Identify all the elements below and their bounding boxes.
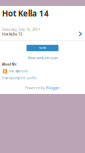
staticText: View my complete profile: [2, 76, 37, 80]
button[interactable]: Home: [26, 45, 58, 51]
staticText: Home: [38, 46, 46, 50]
button[interactable]: View web version: [0, 56, 85, 60]
staticText: Hot Kella 14: [2, 8, 49, 19]
button[interactable]: Blogger: [46, 85, 60, 90]
staticText: About Me: [2, 63, 17, 66]
staticText: View web version: [27, 55, 57, 60]
button[interactable]: B: [0, 69, 85, 74]
staticText: Hot Kella 13: [2, 31, 22, 36]
staticText: B: [3, 69, 6, 74]
staticText: Saturday, July 16, 2011: [2, 27, 40, 32]
button[interactable]: View my complete profile: [0, 76, 37, 80]
staticText: Powered by: [25, 85, 45, 90]
staticText: Blogger: [46, 85, 60, 90]
staticText: loku ayya nodu: [8, 69, 28, 73]
button[interactable]: Hot Kella 13: [0, 30, 85, 37]
